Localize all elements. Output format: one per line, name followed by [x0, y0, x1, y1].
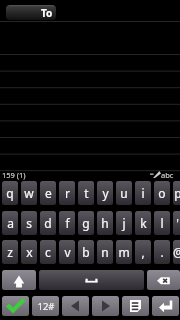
staticText: q: [6, 185, 14, 201]
button[interactable]: @: [173, 240, 180, 264]
staticText: n: [101, 244, 109, 260]
button[interactable]: Next: [92, 296, 119, 316]
button[interactable]: e: [40, 181, 56, 205]
staticText: b: [82, 244, 90, 260]
button[interactable]: m: [116, 240, 132, 264]
staticText: f: [65, 215, 70, 231]
button[interactable]: c: [40, 240, 56, 264]
button[interactable]: x: [21, 240, 37, 264]
staticText: k: [140, 215, 147, 231]
staticText: y: [102, 185, 109, 201]
button[interactable]: ,: [135, 240, 151, 264]
staticText: u: [120, 185, 128, 201]
button[interactable]: z: [2, 240, 18, 264]
button[interactable]: l: [154, 211, 170, 235]
button[interactable]: i: [135, 181, 151, 205]
button[interactable]: o: [154, 181, 170, 205]
button[interactable]: Shift: [2, 270, 36, 290]
staticText: j: [122, 215, 126, 231]
staticText: .: [160, 244, 164, 260]
button[interactable]: Accept: [2, 296, 29, 316]
staticText: l: [160, 215, 164, 231]
button[interactable]: b: [78, 240, 94, 264]
staticText: o: [158, 185, 166, 201]
button[interactable]: f: [59, 211, 75, 235]
button[interactable]: To: [6, 5, 56, 20]
button[interactable]: n: [97, 240, 113, 264]
staticText: x: [26, 244, 33, 260]
button[interactable]: s: [21, 211, 37, 235]
staticText: h: [101, 215, 109, 231]
button[interactable]: a: [2, 211, 18, 235]
button[interactable]: Backspace: [147, 270, 180, 290]
staticText: @: [173, 244, 180, 260]
staticText: e: [45, 185, 52, 201]
staticText: t: [84, 185, 89, 201]
button[interactable]: Enter: [152, 296, 179, 316]
staticText: w: [24, 185, 34, 201]
staticText: s: [26, 215, 32, 231]
button[interactable]: h: [97, 211, 113, 235]
staticText: 159 (1): [2, 170, 26, 180]
button[interactable]: ': [173, 211, 180, 235]
staticText: p: [174, 185, 180, 201]
button[interactable]: q: [2, 181, 18, 205]
button[interactable]: v: [59, 240, 75, 264]
button[interactable]: k: [135, 211, 151, 235]
button[interactable]: u: [116, 181, 132, 205]
button[interactable]: j: [116, 211, 132, 235]
staticText: c: [45, 244, 51, 260]
button[interactable]: g: [78, 211, 94, 235]
staticText: i: [141, 185, 145, 201]
button[interactable]: t: [78, 181, 94, 205]
staticText: g: [82, 215, 90, 231]
staticText: m: [118, 244, 130, 260]
staticText: 12#: [37, 300, 55, 313]
staticText: r: [65, 185, 70, 201]
staticText: To: [41, 6, 53, 20]
button[interactable]: y: [97, 181, 113, 205]
button[interactable]: d: [40, 211, 56, 235]
staticText: a: [7, 215, 14, 231]
staticText: ': [176, 215, 179, 231]
staticText: ,: [141, 244, 145, 260]
button[interactable]: .: [154, 240, 170, 264]
button[interactable]: Menu: [122, 296, 149, 316]
button[interactable]: p: [173, 181, 180, 205]
staticText: v: [64, 244, 71, 260]
staticText: d: [44, 215, 52, 231]
staticText: abc: [161, 170, 174, 180]
button[interactable]: r: [59, 181, 75, 205]
button[interactable]: 12#: [32, 296, 59, 316]
button[interactable]: w: [21, 181, 37, 205]
button[interactable]: Previous: [62, 296, 89, 316]
button[interactable]: Space: [39, 270, 144, 290]
staticText: z: [7, 244, 13, 260]
